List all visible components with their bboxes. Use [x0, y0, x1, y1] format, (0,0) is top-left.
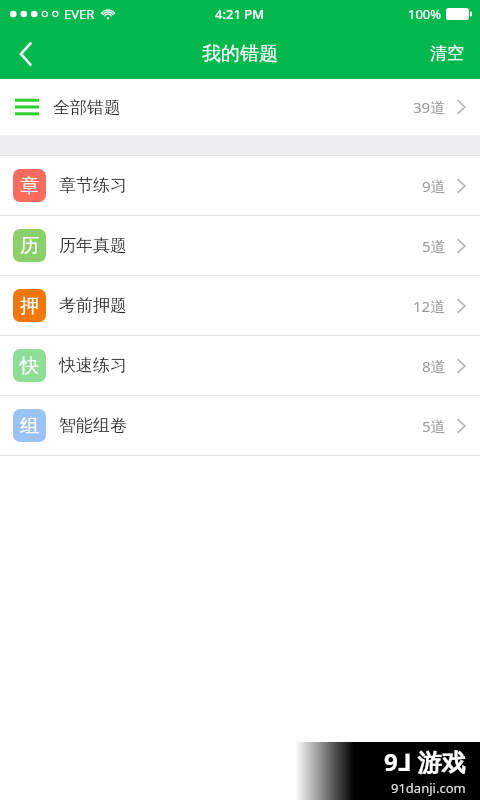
staticText: 历年真题: [59, 235, 127, 256]
staticText: 5道: [422, 236, 446, 256]
staticText: 12道: [413, 296, 446, 316]
staticText: 历: [20, 234, 39, 258]
button[interactable]: 快: [0, 336, 480, 395]
staticText: 快速练习: [59, 355, 127, 376]
staticText: 9道: [422, 176, 446, 196]
staticText: 我的错题: [202, 42, 278, 66]
button[interactable]: 清空: [414, 28, 480, 79]
staticText: EVER: [64, 5, 95, 23]
staticText: 押: [20, 294, 39, 318]
button[interactable]: 押: [0, 276, 480, 335]
button[interactable]: 历: [0, 216, 480, 275]
staticText: 考前押题: [59, 295, 127, 316]
staticText: 8道: [422, 356, 446, 376]
staticText: 章: [20, 174, 39, 198]
button[interactable]: 组: [0, 396, 480, 455]
staticText: 5道: [422, 416, 446, 436]
staticText: 4:21 PM: [215, 5, 265, 23]
staticText: 清空: [430, 43, 464, 64]
staticText: 39道: [413, 97, 446, 117]
staticText: 智能组卷: [59, 415, 127, 436]
staticText: 全部错题: [53, 97, 121, 118]
staticText: 100%: [408, 5, 442, 23]
button[interactable]: Back: [0, 28, 52, 79]
staticText: 章节练习: [59, 175, 127, 196]
staticText: 组: [20, 414, 39, 438]
staticText: 91danji.com: [391, 779, 466, 797]
button[interactable]: 章: [0, 156, 480, 215]
staticText: 快: [20, 354, 39, 378]
button[interactable]: 全部错题: [0, 79, 480, 135]
staticText: 9⅃ 游戏: [384, 745, 466, 778]
